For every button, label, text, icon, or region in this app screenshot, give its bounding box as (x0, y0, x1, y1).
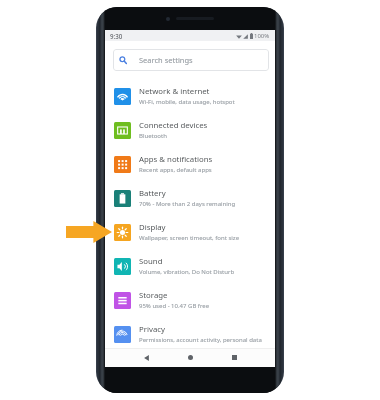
button[interactable]: Network & internet (105, 79, 275, 113)
staticText: Wallpaper, screen timeout, font size (139, 234, 240, 242)
staticText: 95% used - 10.47 GB free (139, 302, 210, 310)
button[interactable]: Sound (105, 249, 275, 283)
button[interactable]: Recents (224, 348, 244, 367)
staticText: Display (139, 222, 166, 233)
staticText: Network & internet (139, 86, 210, 97)
staticText: 9:30 (110, 32, 123, 40)
staticText: Permissions, account activity, personal … (139, 336, 262, 344)
button[interactable]: Display (105, 215, 275, 249)
button[interactable]: Back (136, 348, 156, 367)
staticText: 70% - More than 2 days remaining (139, 200, 236, 208)
staticText: Connected devices (139, 120, 208, 131)
button[interactable]: Battery (105, 181, 275, 215)
button[interactable]: Apps & notifications (105, 147, 275, 181)
staticText: Search settings (139, 55, 193, 65)
button[interactable]: Home (180, 348, 200, 367)
staticText: Apps & notifications (139, 154, 213, 165)
staticText: Sound (139, 256, 163, 267)
button[interactable]: Storage (105, 283, 275, 317)
staticText: Bluetooth (139, 132, 167, 140)
staticText: Storage (139, 290, 168, 301)
staticText: Privacy (139, 324, 166, 335)
staticText: 100% (254, 32, 270, 40)
button[interactable]: Privacy (105, 317, 275, 351)
staticText: Volume, vibration, Do Not Disturb (139, 268, 235, 276)
staticText: Battery (139, 188, 166, 199)
button[interactable]: Search settings (113, 49, 269, 71)
button[interactable]: Connected devices (105, 113, 275, 147)
staticText: Wi-Fi, mobile, data usage, hotspot (139, 98, 235, 106)
staticText: Recent apps, default apps (139, 166, 212, 174)
